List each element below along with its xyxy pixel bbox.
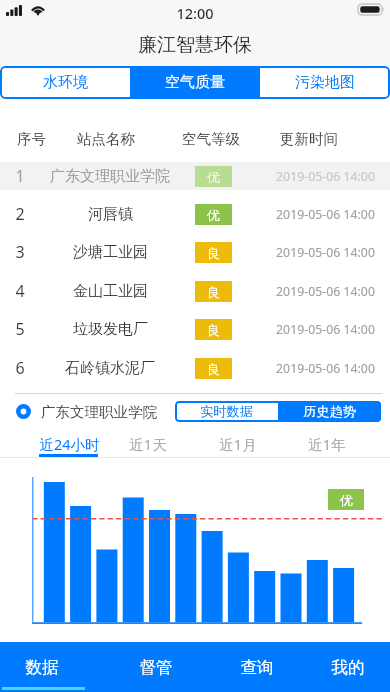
staticText: 良 [207, 245, 220, 261]
staticText: 河唇镇 [88, 205, 133, 224]
staticText: 广东文理职业学院 [50, 167, 170, 186]
staticText: 廉江智慧环保 [138, 33, 252, 57]
staticText: 2019-05-06 14:00 [276, 360, 375, 377]
button[interactable]: 选择站点 [16, 404, 31, 419]
staticText: 近1天 [129, 434, 167, 454]
staticText: 序号 [17, 130, 46, 148]
staticText: 我的 [331, 657, 365, 678]
button[interactable]: 我的 [293, 642, 390, 692]
staticText: 2019-05-06 14:00 [276, 321, 375, 338]
staticText: 5 [15, 318, 25, 340]
button[interactable]: 近1年 [282, 430, 372, 457]
staticText: 实时数据 [200, 403, 253, 420]
staticText: 数据 [25, 657, 59, 678]
staticText: 3 [15, 241, 25, 263]
staticText: 站点名称 [77, 130, 135, 148]
button[interactable]: 3 [0, 238, 390, 266]
button[interactable]: 1 [0, 162, 390, 190]
staticText: 优 [207, 169, 220, 185]
staticText: 2 [15, 203, 25, 225]
staticText: 查询 [240, 657, 274, 678]
button[interactable]: 2 [0, 200, 390, 228]
button[interactable]: 近24小时 [24, 430, 114, 457]
staticText: 近1月 [219, 434, 257, 454]
staticText: 空气质量 [165, 73, 225, 92]
staticText: 垃圾发电厂 [73, 320, 148, 339]
staticText: 近1年 [308, 434, 346, 454]
staticText: 4 [15, 280, 25, 302]
button[interactable]: 近1天 [103, 430, 193, 457]
button[interactable]: 实时数据 [175, 401, 278, 422]
staticText: 2019-05-06 14:00 [276, 206, 375, 223]
button[interactable]: 水环境 [0, 66, 130, 99]
button[interactable]: 空气质量 [130, 66, 260, 99]
button[interactable]: 近1月 [193, 430, 283, 457]
staticText: 良 [207, 284, 220, 300]
button[interactable]: 查询 [195, 642, 293, 692]
staticText: 水环境 [43, 73, 88, 92]
button[interactable]: 5 [0, 315, 390, 343]
staticText: 6 [15, 357, 25, 379]
staticText: 12:00 [176, 3, 214, 23]
staticText: 1 [15, 165, 25, 187]
button[interactable]: 督管 [98, 642, 196, 692]
staticText: 更新时间 [280, 130, 338, 148]
staticText: 广东文理职业学院 [41, 403, 157, 421]
staticText: 金山工业园 [73, 282, 148, 301]
staticText: 空气等级 [182, 130, 240, 148]
button[interactable]: 4 [0, 277, 390, 305]
staticText: 2019-05-06 14:00 [276, 244, 375, 261]
staticText: 督管 [139, 657, 173, 678]
button[interactable]: 数据 [0, 642, 98, 692]
staticText: 良 [207, 361, 220, 377]
staticText: 污染地图 [295, 73, 355, 92]
staticText: 优 [340, 492, 353, 508]
staticText: 良 [207, 322, 220, 338]
button[interactable]: 污染地图 [260, 66, 390, 99]
staticText: 2019-05-06 14:00 [276, 283, 375, 300]
staticText: 优 [207, 207, 220, 223]
staticText: 沙塘工业园 [73, 243, 148, 262]
staticText: 近24小时 [39, 434, 100, 454]
staticText: 历史趋势 [303, 403, 356, 420]
staticText: 石岭镇水泥厂 [65, 359, 155, 378]
button[interactable]: 历史趋势 [278, 401, 381, 422]
staticText: 2019-05-06 14:00 [276, 168, 375, 185]
button[interactable]: 6 [0, 354, 390, 382]
